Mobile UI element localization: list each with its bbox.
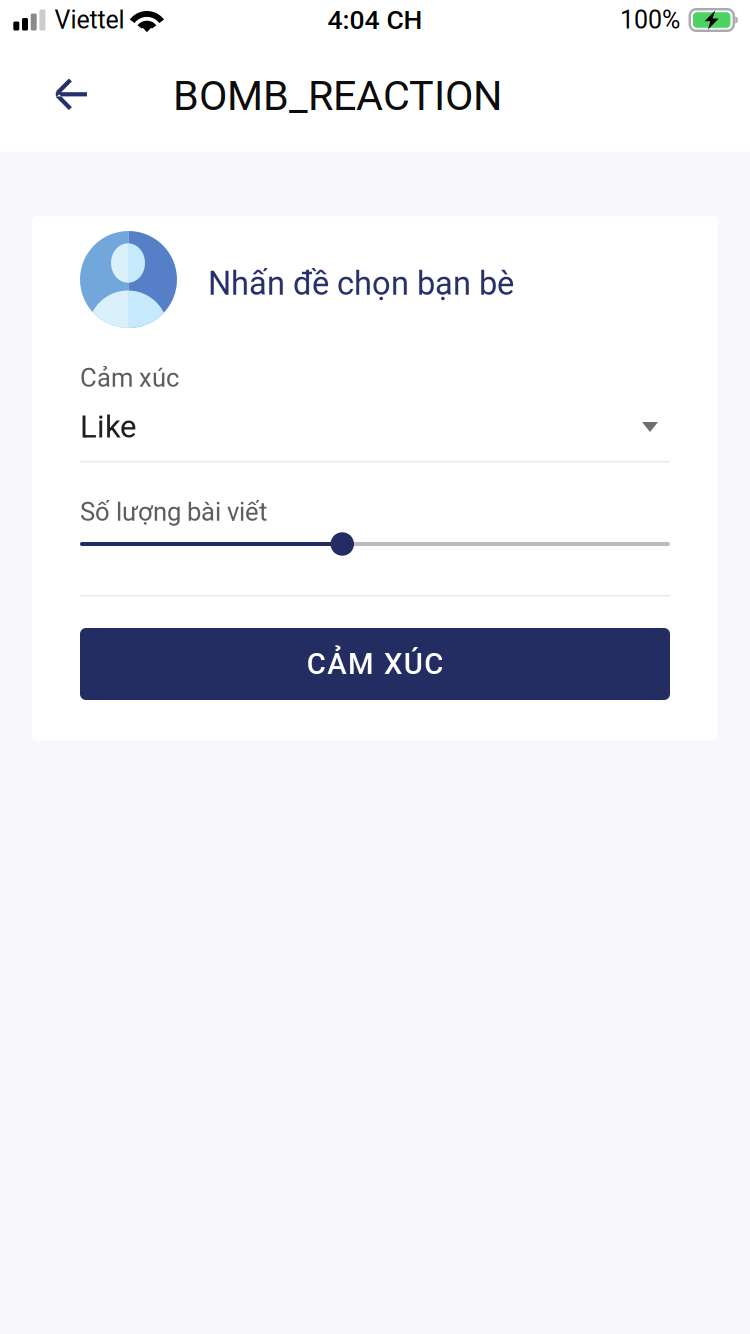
staticText: Nhấn đề chọn bạn bè [208,264,514,303]
staticText: Viettel [54,5,124,35]
button[interactable]: Like [80,407,670,447]
button[interactable]: CẢM XÚC [80,628,670,700]
staticText: CẢM XÚC [307,647,443,681]
button[interactable]: Back [39,62,103,126]
staticText: 100% [620,5,680,35]
staticText: BOMB_REACTION [173,72,502,120]
staticText: Like [80,409,136,445]
staticText: Số lượng bài viết [80,497,267,527]
staticText: 4:04 CH [327,4,422,36]
staticText: Cảm xúc [80,363,179,393]
button[interactable]: Nhấn đề chọn bạn bè [80,231,670,328]
